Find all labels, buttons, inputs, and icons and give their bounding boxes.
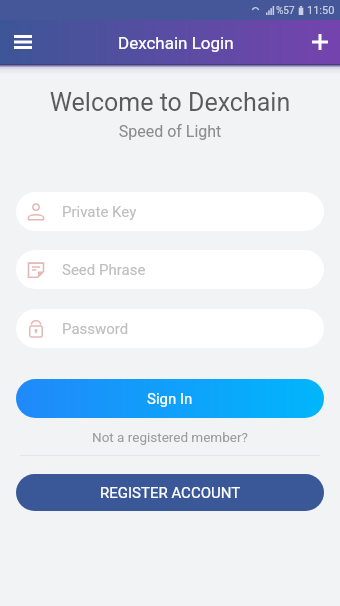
button[interactable]: Seed Phrase <box>16 250 324 289</box>
staticText: %57 <box>276 5 295 17</box>
staticText: Welcome to Dexchain <box>0 88 340 117</box>
staticText: Dexchain Login <box>118 33 234 53</box>
button[interactable]: Not a registered member? <box>0 427 340 447</box>
staticText: Seed Phrase <box>62 261 146 279</box>
button[interactable]: Open navigation menu <box>5 24 41 60</box>
staticText: Not a registered member? <box>92 429 248 445</box>
staticText: Sign In <box>147 390 193 408</box>
staticText: Speed of Light <box>0 122 340 141</box>
button[interactable]: Sign In <box>16 379 324 418</box>
button[interactable]: Password <box>16 309 324 348</box>
button[interactable]: Private Key <box>16 192 324 231</box>
staticText: Password <box>62 320 129 338</box>
staticText: REGISTER ACCOUNT <box>100 484 241 502</box>
staticText: 11:50 <box>307 4 335 17</box>
staticText: Private Key <box>62 203 137 221</box>
button[interactable]: Add <box>302 24 338 60</box>
button[interactable]: REGISTER ACCOUNT <box>16 474 324 511</box>
